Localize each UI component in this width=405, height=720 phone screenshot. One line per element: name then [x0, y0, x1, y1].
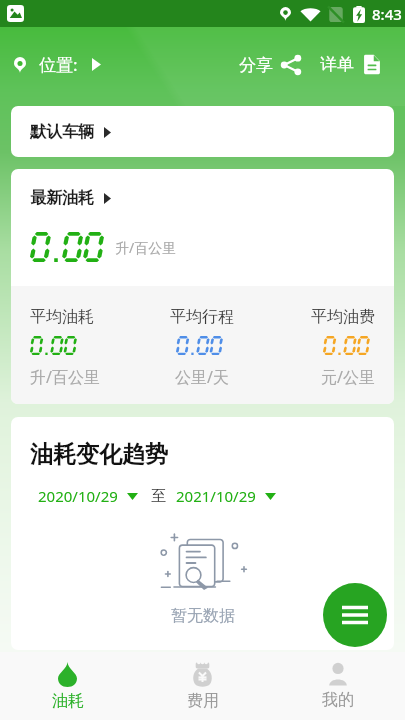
staticText: 8:43 [372, 4, 402, 24]
staticText: 分享 [239, 55, 273, 76]
staticText: 平均行程 [170, 307, 234, 327]
button[interactable]: 油耗 [0, 653, 135, 720]
staticText: 至 [151, 487, 166, 506]
staticText: 最新油耗 [30, 188, 94, 208]
button[interactable]: 2020/10/29 [38, 486, 138, 506]
button[interactable]: 默认车辆 [11, 106, 394, 157]
staticText: 详单 [320, 54, 354, 75]
staticText: 油耗 [52, 691, 84, 711]
button[interactable]: 费用 [135, 653, 270, 720]
staticText: 2021/10/29 [176, 486, 256, 506]
staticText: 平均油耗 [30, 307, 94, 327]
button[interactable]: 2021/10/29 [176, 486, 276, 506]
staticText: 位置: [39, 53, 78, 76]
staticText: 2020/10/29 [38, 486, 118, 506]
staticText: 升/百公里 [115, 238, 177, 257]
button[interactable]: 最新油耗 [30, 188, 111, 208]
staticText: 默认车辆 [30, 122, 94, 142]
staticText: 平均油费 [311, 307, 375, 327]
staticText: 公里/天 [175, 366, 229, 388]
button[interactable]: 详单 [320, 45, 383, 84]
staticText: 我的 [322, 690, 354, 710]
button[interactable]: Menu [323, 583, 387, 647]
staticText: 升/百公里 [30, 366, 100, 388]
staticText: 元/公里 [321, 366, 375, 388]
button[interactable]: 我的 [270, 653, 405, 719]
button[interactable]: 分享 [239, 46, 302, 84]
staticText: 暂无数据 [171, 606, 235, 626]
staticText: 费用 [187, 691, 219, 711]
button[interactable]: 位置: [12, 45, 103, 84]
staticText: 油耗变化趋势 [30, 440, 168, 469]
